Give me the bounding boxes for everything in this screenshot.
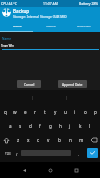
button[interactable]: h [55, 119, 65, 133]
button[interactable]: BACKUP [0, 21, 34, 31]
button[interactable]: p [90, 105, 100, 119]
staticText: q [4, 109, 7, 115]
staticText: u [64, 109, 67, 115]
staticText: k [79, 123, 82, 129]
staticText: e [24, 109, 27, 115]
button[interactable]: y [50, 105, 60, 119]
button[interactable]: n [65, 133, 76, 147]
staticText: f [39, 123, 41, 129]
staticText: c [37, 137, 40, 143]
staticText: / [16, 152, 18, 157]
button[interactable]: Shift [0, 133, 13, 147]
staticText: Storage: Internal Storage (548 MB) [13, 14, 67, 18]
button[interactable]: a [5, 119, 15, 133]
staticText: g [49, 123, 52, 129]
staticText: p [94, 109, 97, 115]
staticText: j [69, 123, 71, 129]
staticText: . [78, 152, 79, 157]
button[interactable]: ENCRYPTION [67, 21, 100, 31]
staticText: CPU 44 °C [1, 1, 17, 6]
staticText: a [9, 123, 12, 129]
staticText: 11:07 AM [43, 1, 58, 6]
staticText: OPTIONS [46, 25, 56, 28]
button[interactable]: u [60, 105, 70, 119]
staticText: BACKUP [13, 25, 22, 28]
staticText: ?123 [5, 152, 11, 156]
button[interactable]: Cancel [17, 80, 41, 88]
button[interactable]: f [35, 119, 45, 133]
button[interactable]: d [25, 119, 35, 133]
button[interactable]: l [85, 119, 95, 133]
staticText: Battery 28% [79, 1, 99, 6]
staticText: Team Win [1, 44, 14, 48]
button[interactable]: k [75, 119, 85, 133]
staticText: d [29, 123, 32, 129]
button[interactable]: Recents [70, 164, 82, 176]
staticText: Name [2, 37, 11, 41]
button[interactable]: q [0, 105, 10, 119]
staticText: r [34, 109, 36, 115]
button[interactable]: j [65, 119, 75, 133]
staticText: l [89, 123, 91, 129]
staticText: b [58, 137, 61, 143]
button[interactable]: m [76, 133, 87, 147]
staticText: s [19, 123, 22, 129]
button[interactable]: Enter [87, 148, 98, 158]
staticText: Backup [13, 8, 30, 14]
button[interactable]: t [40, 105, 50, 119]
button[interactable]: Home [44, 164, 56, 176]
button[interactable]: v [43, 133, 54, 147]
button[interactable]: i [70, 105, 80, 119]
button[interactable]: c [33, 133, 43, 147]
staticText: y [54, 109, 57, 115]
button[interactable]: / [13, 147, 21, 161]
button[interactable]: z [13, 133, 23, 147]
staticText: v [47, 137, 50, 143]
staticText: t [44, 109, 46, 115]
staticText: w [13, 109, 17, 115]
staticText: o [84, 109, 87, 115]
button[interactable]: OPTIONS [34, 21, 67, 31]
staticText: n [69, 137, 72, 143]
button[interactable]: x [23, 133, 33, 147]
staticText: x [27, 137, 30, 143]
staticText: m [79, 137, 84, 143]
button[interactable]: ?123 [1, 147, 14, 161]
button[interactable]: Backspace [87, 133, 100, 147]
staticText: ENCRYPTION [77, 25, 91, 28]
button[interactable]: s [15, 119, 25, 133]
button[interactable]: b [54, 133, 65, 147]
staticText: Append Date [62, 82, 83, 86]
staticText: i [74, 109, 76, 115]
staticText: z [17, 137, 20, 143]
staticText: Cancel [24, 82, 35, 86]
button[interactable]: Append Date [58, 80, 87, 88]
button[interactable]: Back [18, 164, 30, 176]
button[interactable]: TWRP icon [2, 8, 11, 17]
button[interactable]: . [73, 147, 83, 161]
button[interactable]: g [45, 119, 55, 133]
button[interactable]: w [10, 105, 20, 119]
button[interactable]: r [30, 105, 40, 119]
staticText: h [59, 123, 62, 129]
button[interactable]: o [80, 105, 90, 119]
button[interactable]: e [20, 105, 30, 119]
